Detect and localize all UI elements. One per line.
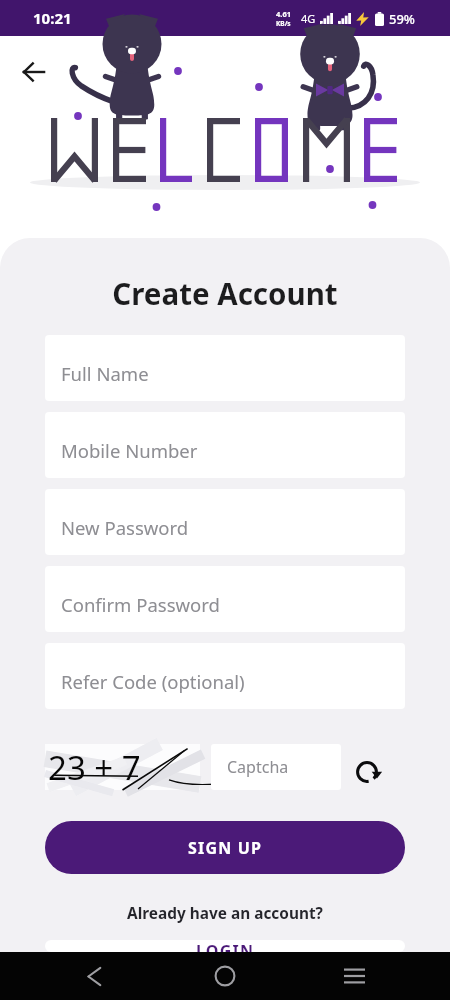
staticText: 23 + 7 <box>48 745 141 790</box>
staticText: Create Account <box>0 273 450 313</box>
button[interactable]: Confirm Password <box>45 566 405 632</box>
staticText: New Password <box>61 515 189 540</box>
staticText: SIGN UP <box>188 837 263 859</box>
button[interactable]: Full Name <box>45 335 405 401</box>
button[interactable]: New Password <box>45 489 405 555</box>
staticText: Confirm Password <box>61 592 220 617</box>
staticText: Captcha <box>227 756 289 778</box>
button[interactable]: Recent apps <box>324 954 384 998</box>
staticText: 59% <box>389 10 415 28</box>
staticText: Already have an account? <box>0 903 450 924</box>
staticText: 4G <box>301 11 316 26</box>
staticText: 10:21 <box>33 8 72 28</box>
button[interactable]: SIGN UP <box>45 821 405 874</box>
button[interactable]: Mobile Number <box>45 412 405 478</box>
staticText: Full Name <box>61 361 149 386</box>
button[interactable]: Refresh captcha <box>341 744 406 790</box>
staticText: KB/s <box>276 19 291 28</box>
button[interactable]: Back <box>64 954 124 998</box>
button[interactable]: Back <box>12 50 56 94</box>
staticText: Mobile Number <box>61 438 198 463</box>
staticText: Refer Code (optional) <box>61 669 245 694</box>
button[interactable]: Refer Code (optional) <box>45 643 405 709</box>
staticText: LOGIN <box>196 940 255 952</box>
button[interactable]: LOGIN <box>45 940 405 952</box>
button[interactable]: Captcha <box>211 744 341 790</box>
staticText: 4.61 <box>276 9 291 19</box>
button[interactable]: Home <box>195 954 255 998</box>
